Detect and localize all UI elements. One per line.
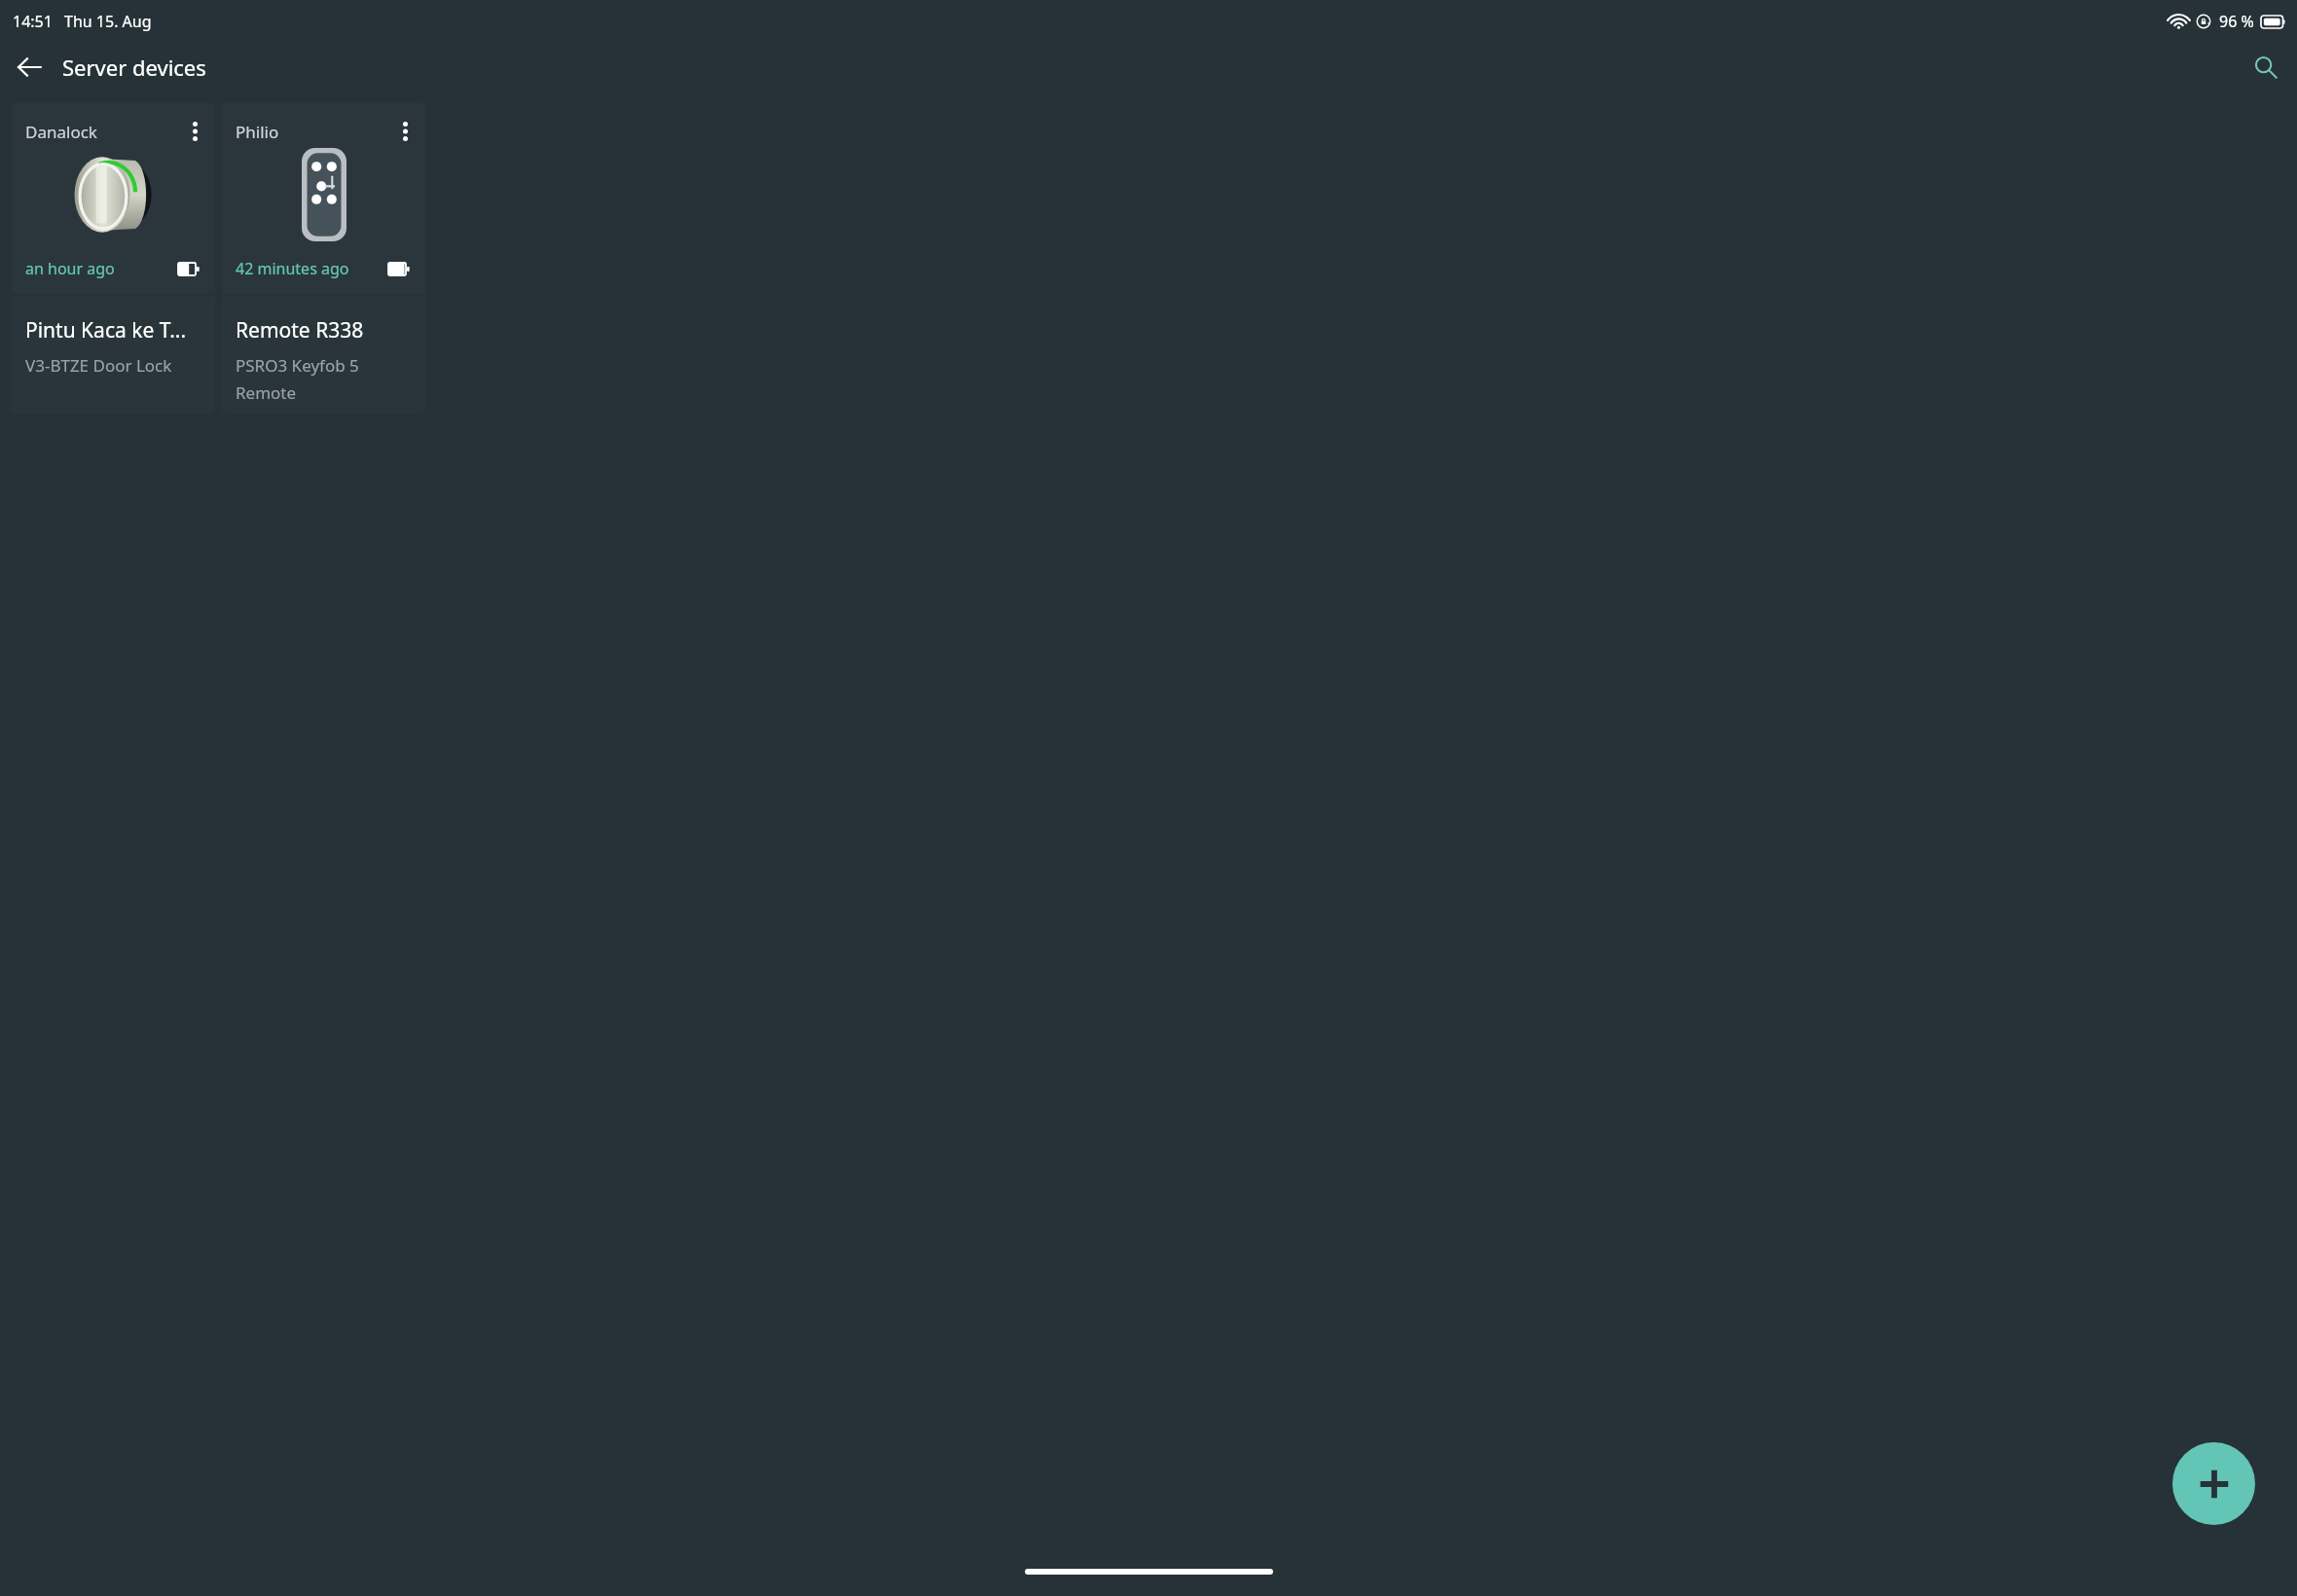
staticText: Remote R338 — [236, 316, 364, 345]
button[interactable]: Back — [8, 46, 51, 89]
button[interactable]: More options — [390, 117, 419, 146]
button[interactable]: Danalock — [12, 103, 215, 414]
button[interactable]: Add device — [2172, 1442, 2255, 1525]
staticText: PSRO3 Keyfob 5 — [236, 354, 359, 377]
staticText: V3-BTZE Door Lock — [25, 354, 172, 377]
staticText: Remote — [236, 381, 297, 404]
staticText: Philio — [236, 121, 279, 143]
staticText: Danalock — [25, 121, 97, 143]
button[interactable]: Philio — [222, 103, 425, 414]
staticText: Server devices — [62, 53, 206, 82]
staticText: 14:51 — [13, 11, 53, 32]
staticText: 42 minutes ago — [236, 258, 349, 279]
staticText: an hour ago — [25, 258, 115, 279]
staticText: Thu 15. Aug — [64, 11, 152, 32]
button[interactable]: Search — [2244, 46, 2287, 89]
button[interactable]: More options — [180, 117, 209, 146]
staticText: 96 % — [2219, 11, 2254, 32]
staticText: Pintu Kaca ke T... — [25, 316, 187, 345]
